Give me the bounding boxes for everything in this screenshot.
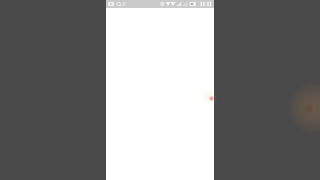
other: Status bar (106, 0, 214, 8)
